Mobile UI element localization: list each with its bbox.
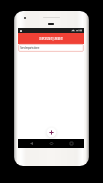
button[interactable]: Back <box>24 139 38 148</box>
button[interactable]: Home <box>44 139 58 148</box>
staticText: IMPORTANT_URGENT <box>39 37 63 41</box>
button[interactable]: Add <box>44 126 59 139</box>
staticText: Send reports done <box>20 46 39 50</box>
button[interactable]: Recents <box>64 139 78 148</box>
button[interactable]: Send reports done <box>18 44 84 52</box>
